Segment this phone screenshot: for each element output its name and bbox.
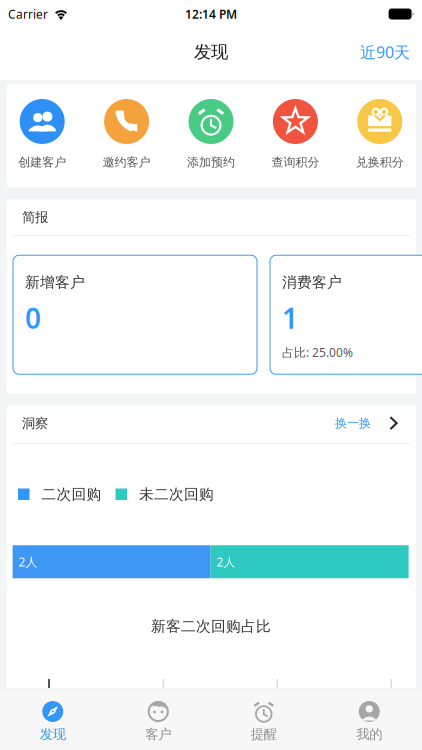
staticText: 提醒	[251, 726, 277, 742]
button[interactable]: 客户	[105, 690, 211, 750]
staticText: 客户	[145, 726, 171, 742]
staticText: 简报	[22, 209, 48, 225]
staticText: 未二次回购	[139, 485, 214, 503]
staticText: 二次回购	[41, 485, 101, 503]
button[interactable]: 换一换	[329, 410, 404, 437]
button[interactable]: 创建客户	[0, 99, 84, 170]
staticText: 2人	[217, 554, 236, 570]
staticText: 添加预约	[187, 155, 235, 170]
staticText: 查询积分	[271, 155, 319, 170]
button[interactable]: 发现	[0, 690, 105, 750]
staticText: 发现	[40, 726, 66, 742]
staticText: 创建客户	[18, 155, 66, 170]
staticText: 新客二次回购占比	[151, 617, 271, 635]
button[interactable]: 邀约客户	[84, 99, 169, 170]
staticText: 0	[25, 299, 41, 336]
staticText: 新增客户	[25, 273, 85, 291]
staticText: 我的	[356, 726, 382, 742]
staticText: 邀约客户	[103, 155, 151, 170]
staticText: 洞察	[22, 415, 48, 431]
staticText: 发现	[194, 41, 228, 63]
staticText: 近90天	[360, 41, 410, 63]
staticText: 消费客户	[282, 273, 342, 291]
button[interactable]: 添加预约	[169, 99, 253, 170]
button[interactable]: 查询积分	[253, 99, 338, 170]
staticText: Carrier	[8, 6, 48, 22]
button[interactable]: 我的	[316, 690, 422, 750]
staticText: 换一换	[335, 416, 371, 431]
button[interactable]: 近90天	[352, 33, 418, 71]
staticText: 12:14 PM	[185, 6, 237, 22]
button[interactable]: 提醒	[211, 690, 316, 750]
staticText: 占比: 25.00%	[282, 344, 353, 360]
button[interactable]: 兑换积分	[338, 99, 422, 170]
staticText: 1	[282, 299, 298, 336]
staticText: 2人	[19, 554, 38, 570]
staticText: 兑换积分	[356, 155, 404, 170]
